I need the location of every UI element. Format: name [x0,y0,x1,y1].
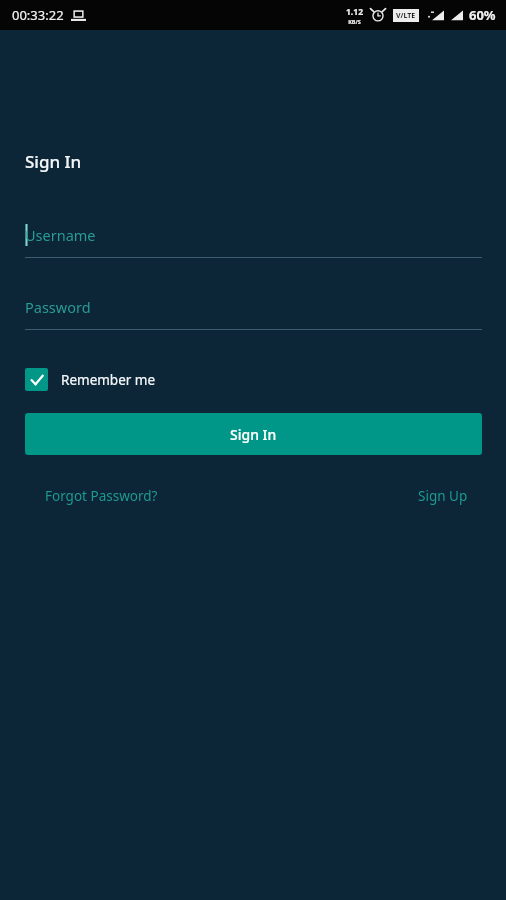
button[interactable]: Sign Up [404,481,482,511]
button[interactable]: Username [25,223,482,258]
button[interactable]: Sign In [25,413,482,455]
staticText: Password [25,297,91,317]
staticText: Forgot Password? [45,487,158,505]
staticText: V/LTE [396,11,416,21]
button[interactable]: Remember me [25,366,168,393]
staticText: Username [25,225,96,245]
staticText: KB/S [348,18,361,25]
staticText: 60% [469,6,496,24]
button[interactable]: Forgot Password? [25,481,178,511]
staticText: 00:33:22 [12,6,64,24]
staticText: Sign In [230,425,277,444]
staticText: Sign In [25,150,82,173]
staticText: Remember me [61,371,156,389]
button[interactable]: Password [25,295,482,330]
staticText: Sign Up [418,487,468,505]
staticText: 1.12 [346,6,363,18]
